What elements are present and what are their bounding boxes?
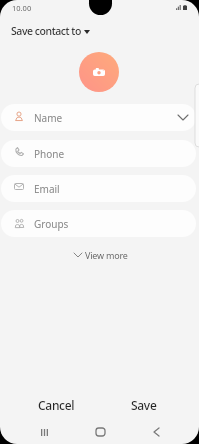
staticText: View more: [85, 249, 128, 261]
button[interactable]: Save: [120, 394, 167, 416]
button[interactable]: Phone: [1, 140, 196, 167]
button[interactable]: Recents: [30, 421, 58, 443]
button[interactable]: Back: [142, 421, 170, 443]
button[interactable]: Cancel: [27, 394, 86, 416]
button[interactable]: View more: [66, 246, 134, 264]
staticText: Save: [131, 397, 157, 413]
button[interactable]: Home: [86, 421, 114, 443]
staticText: Save contact to: [11, 24, 81, 38]
staticText: 10.00: [12, 3, 32, 13]
staticText: Name: [34, 111, 63, 125]
staticText: Phone: [34, 147, 65, 161]
button[interactable]: Add photo: [79, 52, 119, 92]
button[interactable]: Email: [1, 175, 196, 202]
button[interactable]: Name: [1, 104, 196, 131]
staticText: Groups: [34, 217, 69, 231]
staticText: Email: [34, 182, 60, 196]
button[interactable]: Groups: [1, 210, 196, 237]
button[interactable]: Save contact to: [7, 22, 94, 40]
staticText: Cancel: [38, 397, 75, 413]
